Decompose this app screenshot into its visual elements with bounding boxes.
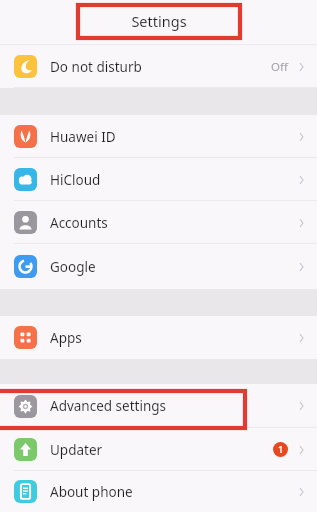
button[interactable]: Updater (0, 428, 317, 471)
staticText: Google (50, 258, 96, 276)
button[interactable]: Advanced settings (0, 384, 317, 428)
staticText: Advanced settings (50, 397, 167, 415)
staticText: Huawei ID (50, 128, 116, 146)
staticText: Do not disturb (50, 58, 142, 76)
staticText: Settings (131, 11, 187, 31)
button[interactable]: About phone (0, 471, 317, 512)
staticText: HiCloud (50, 171, 101, 189)
staticText: Apps (50, 329, 82, 347)
staticText: About phone (50, 483, 133, 501)
staticText: Off (271, 59, 288, 75)
staticText: Accounts (50, 214, 108, 232)
button[interactable]: Google (0, 244, 317, 289)
staticText: 1 (278, 443, 284, 456)
button[interactable]: Accounts (0, 201, 317, 244)
button[interactable]: Huawei ID (0, 115, 317, 158)
button[interactable]: Do not disturb (0, 45, 317, 88)
staticText: Updater (50, 441, 103, 459)
button[interactable]: HiCloud (0, 158, 317, 201)
button[interactable]: Apps (0, 316, 317, 359)
